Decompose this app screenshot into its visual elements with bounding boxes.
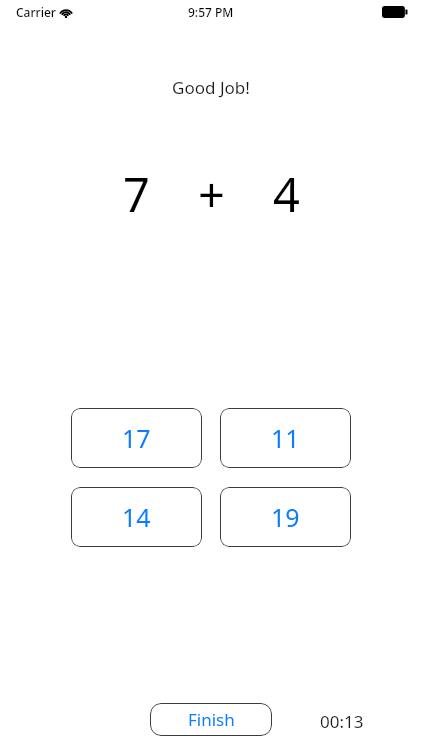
button[interactable]: 14 bbox=[71, 487, 202, 547]
staticText: 4 bbox=[273, 162, 300, 226]
staticText: 14 bbox=[122, 500, 151, 534]
button[interactable]: 11 bbox=[220, 408, 351, 468]
button[interactable]: Finish bbox=[150, 703, 272, 736]
staticText: + bbox=[198, 162, 225, 226]
staticText: 7 bbox=[123, 162, 150, 226]
staticText: 00:13 bbox=[320, 710, 364, 733]
staticText: Good Job! bbox=[0, 76, 422, 99]
staticText: Finish bbox=[188, 708, 235, 731]
staticText: Carrier bbox=[16, 4, 56, 20]
staticText: 17 bbox=[122, 421, 151, 455]
button[interactable]: 19 bbox=[220, 487, 351, 547]
staticText: 19 bbox=[271, 500, 300, 534]
staticText: 9:57 PM bbox=[188, 4, 234, 20]
staticText: 11 bbox=[271, 421, 300, 455]
button[interactable]: 17 bbox=[71, 408, 202, 468]
